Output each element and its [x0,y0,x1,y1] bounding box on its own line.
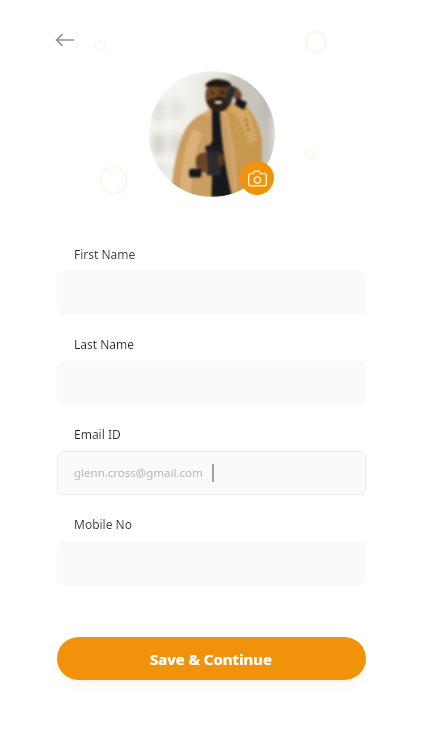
staticText: glenn.cross@gmail.com [74,465,203,481]
button[interactable]: Back [43,18,87,62]
staticText: Last Name [74,336,135,352]
button[interactable]: Change profile photo [240,161,274,195]
button[interactable]: Profile photo [149,71,275,197]
staticText: First Name [74,246,136,262]
button[interactable]: glenn.cross@gmail.com [57,451,366,495]
staticText: Mobile No [74,516,132,532]
button[interactable]: Save & Continue [57,637,366,680]
staticText: Save & Continue [150,649,273,669]
staticText: Email ID [74,426,121,442]
